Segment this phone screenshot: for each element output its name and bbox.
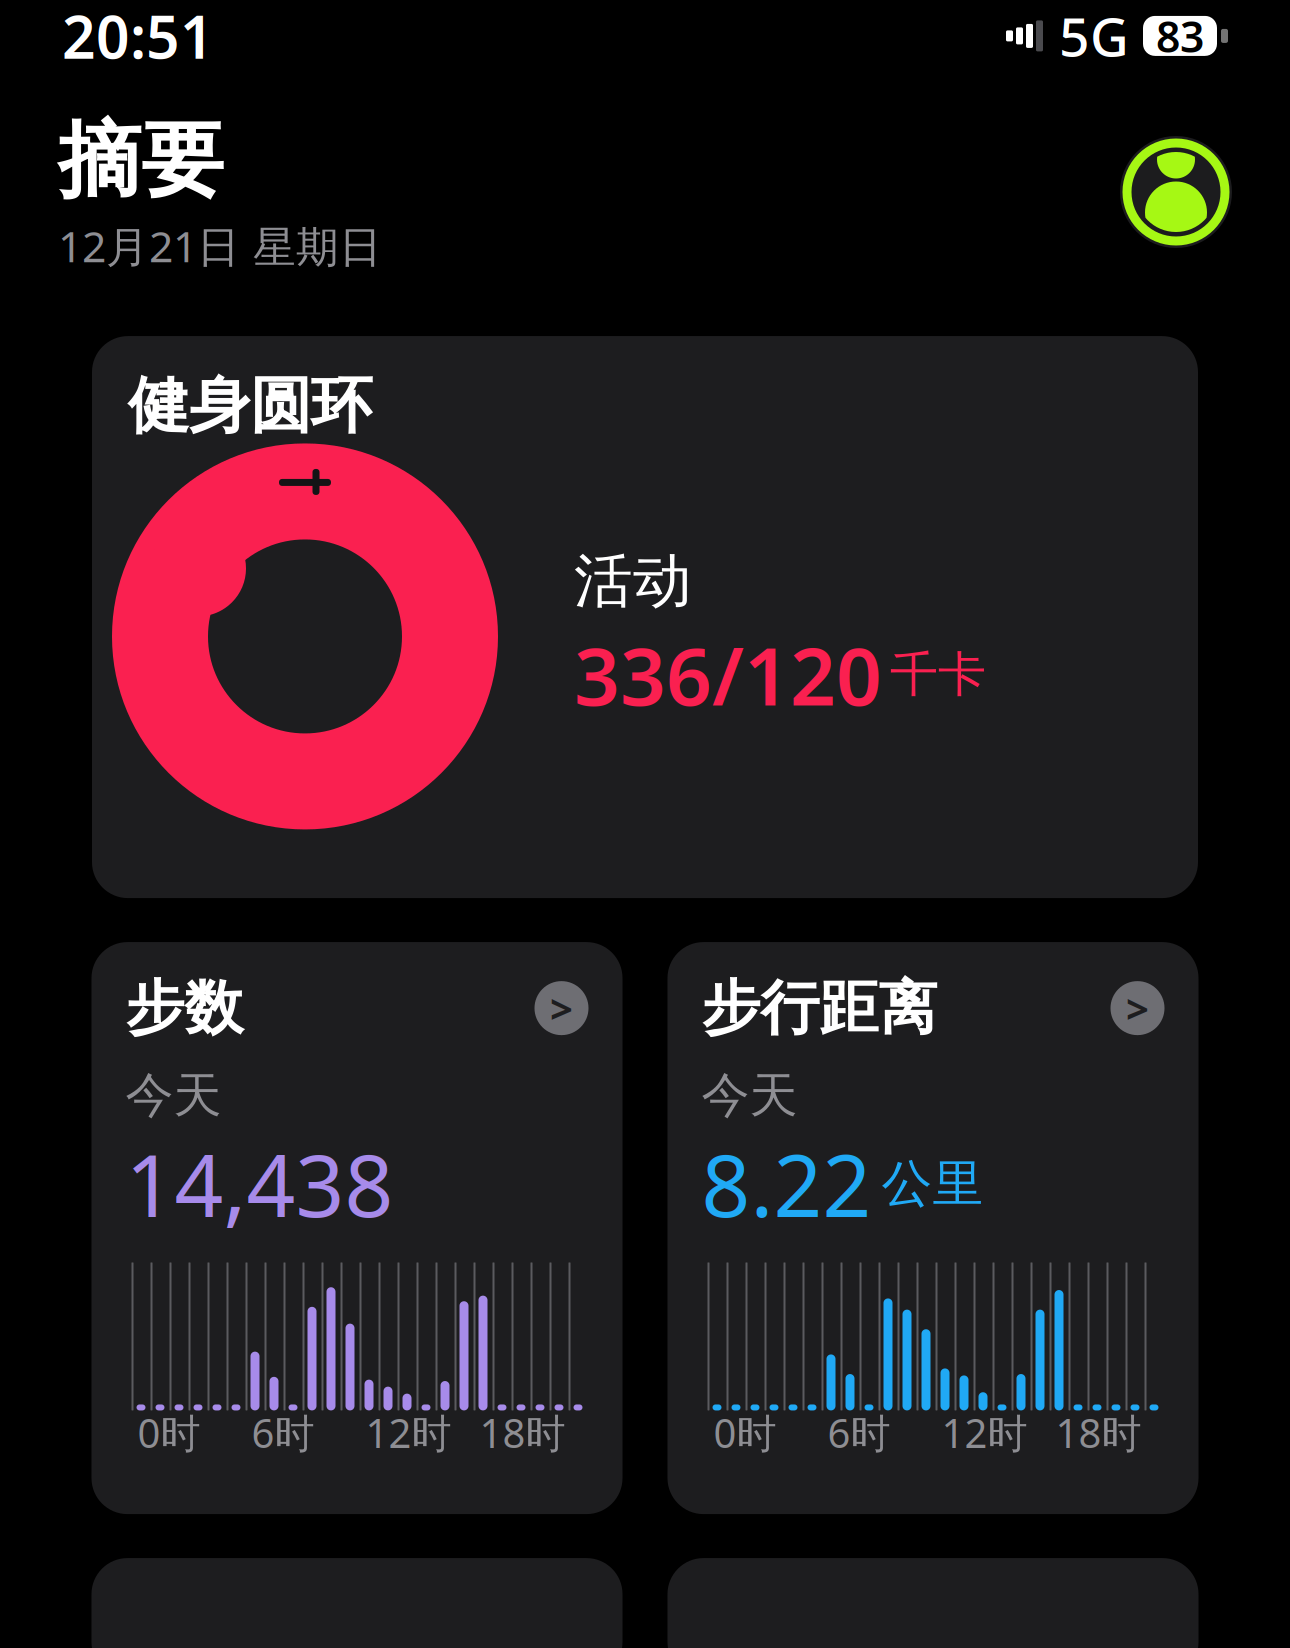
staticText: 步数 [125, 972, 243, 1044]
staticText: 12时 [941, 1406, 1027, 1459]
staticText: 83 [1156, 8, 1204, 64]
staticText: 12时 [365, 1406, 451, 1459]
button[interactable]: 健身圆环 [92, 336, 1198, 898]
staticText: 今天 [701, 1066, 797, 1125]
button[interactable]: 步行距离 [667, 942, 1198, 1514]
staticText: 公里 [881, 1153, 983, 1215]
staticText: 12月21日 星期日 [58, 217, 382, 274]
staticText: 6时 [827, 1406, 890, 1459]
staticText: 5G [1059, 0, 1129, 71]
staticText: 8.22 [701, 1127, 871, 1240]
staticText: 6时 [251, 1406, 314, 1459]
staticText: 0时 [713, 1406, 776, 1459]
staticText: 20:51 [62, 0, 214, 75]
staticText: > [550, 982, 573, 1035]
staticText: 千卡 [890, 645, 986, 704]
button[interactable]: 个人资料 [1120, 136, 1232, 248]
staticText: 14,438 [125, 1127, 393, 1240]
staticText: 步行距离 [701, 972, 937, 1044]
staticText: 18时 [479, 1406, 565, 1459]
staticText: > [1126, 982, 1149, 1035]
button[interactable]: 步数 [91, 942, 622, 1514]
staticText: 活动 [574, 545, 692, 617]
staticText: 336/120 [574, 621, 882, 727]
staticText: 摘要 [58, 110, 224, 211]
staticText: 健身圆环 [128, 368, 372, 443]
staticText: 0时 [137, 1406, 200, 1459]
staticText: 18时 [1055, 1406, 1141, 1459]
staticText: 今天 [125, 1066, 221, 1125]
